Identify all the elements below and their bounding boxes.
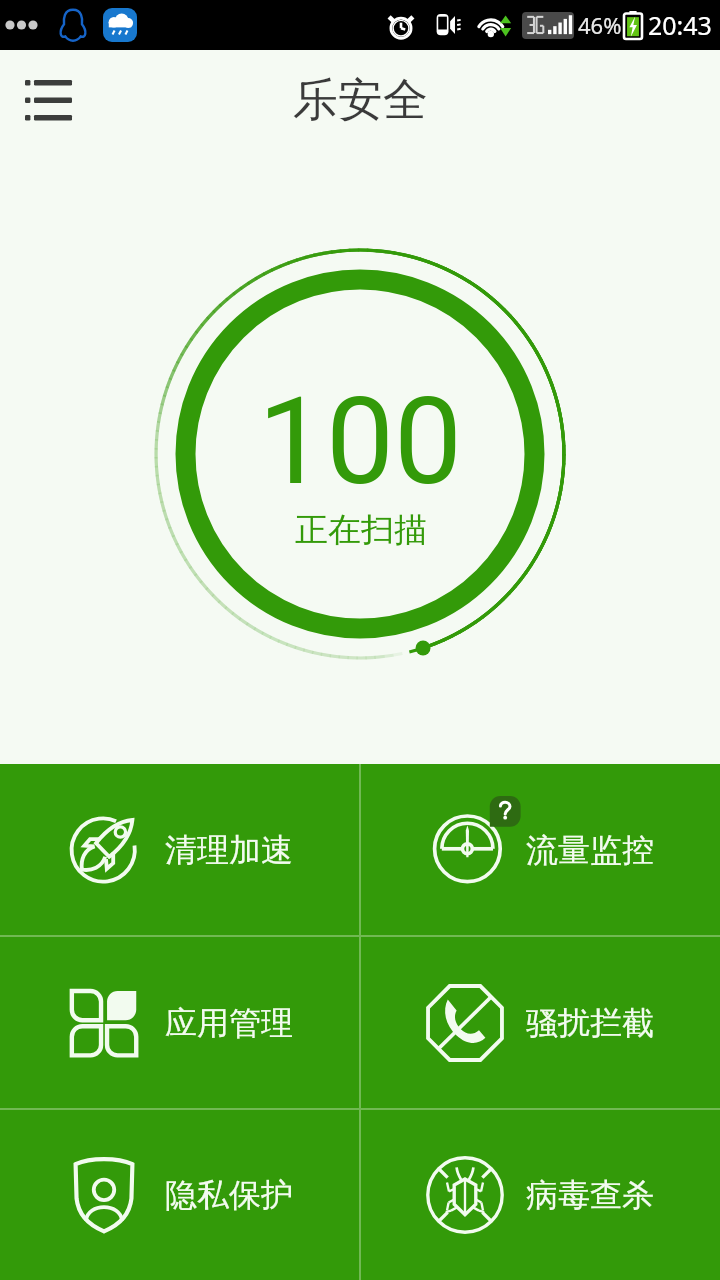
staticText: 46%	[578, 10, 622, 40]
staticText: 流量监控	[526, 830, 654, 870]
staticText: 隐私保护	[165, 1175, 293, 1215]
button[interactable]: 骚扰拦截	[361, 937, 720, 1108]
staticText: 100	[258, 371, 463, 513]
staticText: 正在扫描	[295, 509, 427, 551]
staticText: 清理加速	[165, 830, 293, 870]
button[interactable]: 流量监控	[361, 764, 720, 935]
staticText: 乐安全	[293, 72, 428, 129]
staticText: 20:43	[648, 8, 712, 42]
button[interactable]: 清理加速	[0, 764, 359, 935]
staticText: 病毒查杀	[526, 1175, 654, 1215]
staticText: 应用管理	[165, 1003, 293, 1043]
button[interactable]: 病毒查杀	[361, 1110, 720, 1280]
button[interactable]: 应用管理	[0, 937, 359, 1108]
button[interactable]: Open navigation menu	[8, 60, 88, 140]
button[interactable]: 隐私保护	[0, 1110, 359, 1280]
staticText: 骚扰拦截	[526, 1003, 654, 1043]
